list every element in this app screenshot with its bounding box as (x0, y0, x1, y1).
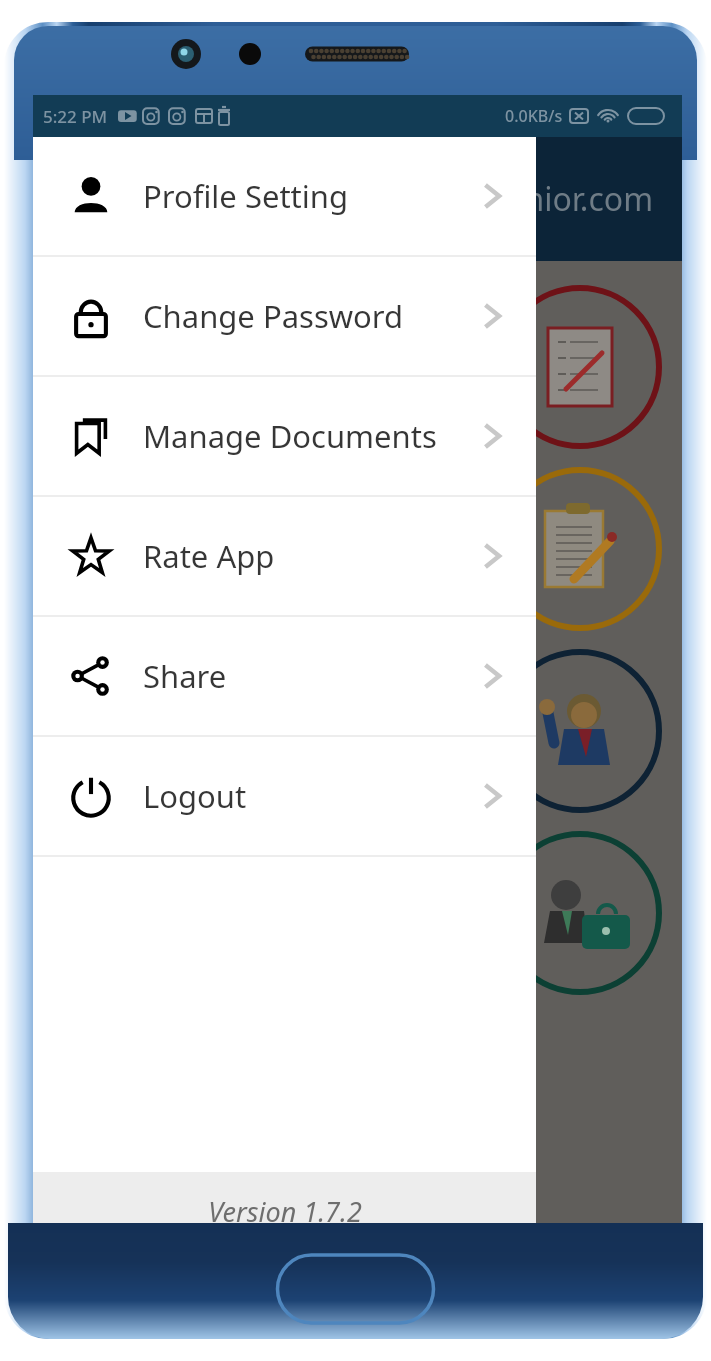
staticText: 5:22 PM (43, 105, 108, 128)
button[interactable] (496, 465, 664, 633)
staticText: Version 1.7.2 (208, 1193, 362, 1230)
button[interactable]: Manage Documents (33, 377, 536, 495)
staticText: LawJunior.com (436, 177, 654, 221)
staticText: Share (143, 655, 227, 697)
button[interactable] (496, 283, 664, 451)
staticText: 0.0KB/s (505, 105, 563, 127)
button[interactable]: Profile Setting (33, 137, 536, 255)
button[interactable] (496, 829, 664, 997)
staticText: Profile Setting (143, 175, 349, 217)
staticText: Logout (143, 775, 247, 817)
staticText: Manage Documents (143, 415, 437, 457)
button[interactable] (496, 647, 664, 815)
staticText: Rate App (143, 535, 275, 577)
staticText: Change Password (143, 295, 404, 337)
button[interactable]: Change Password (33, 257, 536, 375)
button[interactable]: Logout (33, 737, 536, 855)
button[interactable]: Share (33, 617, 536, 735)
button[interactable]: Rate App (33, 497, 536, 615)
